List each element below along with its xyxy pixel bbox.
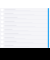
button[interactable] [0,12,50,16]
button[interactable] [0,8,50,12]
button[interactable] [0,32,50,36]
button[interactable] [0,40,50,44]
button[interactable] [0,20,50,24]
button[interactable] [0,28,50,32]
button[interactable] [0,16,50,20]
button[interactable] [0,44,50,48]
button[interactable] [0,36,50,40]
button[interactable] [0,24,50,28]
